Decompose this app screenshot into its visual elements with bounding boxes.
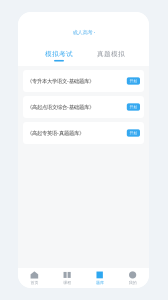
- staticText: 首页: [30, 280, 38, 285]
- staticText: 《高起专英语-真题题库》: [27, 129, 84, 137]
- button[interactable]: 《高起专英语-真题题库》: [18, 122, 149, 144]
- button[interactable]: 首页: [18, 268, 51, 288]
- staticText: 我的: [129, 280, 137, 285]
- button[interactable]: 我的: [116, 268, 149, 288]
- staticText: 模拟考试: [45, 50, 73, 58]
- button[interactable]: 《专升本大学语文-基础题库》: [18, 70, 149, 92]
- staticText: 《高起点语文综合-基础题库》: [27, 103, 94, 111]
- staticText: 题库: [96, 280, 104, 285]
- staticText: 开始: [129, 104, 137, 109]
- button[interactable]: 题库: [83, 268, 116, 288]
- button[interactable]: 课程: [51, 268, 84, 288]
- staticText: 真题模拟: [97, 50, 125, 58]
- staticText: 开始: [129, 130, 137, 135]
- staticText: 成人高考: [72, 29, 92, 36]
- button[interactable]: 真题模拟: [95, 50, 127, 62]
- staticText: 开始: [129, 78, 137, 83]
- button[interactable]: 《高起点语文综合-基础题库》: [18, 96, 149, 118]
- button[interactable]: 模拟考试: [43, 50, 75, 62]
- staticText: 《专升本大学语文-基础题库》: [27, 77, 94, 85]
- staticText: 课程: [63, 280, 71, 285]
